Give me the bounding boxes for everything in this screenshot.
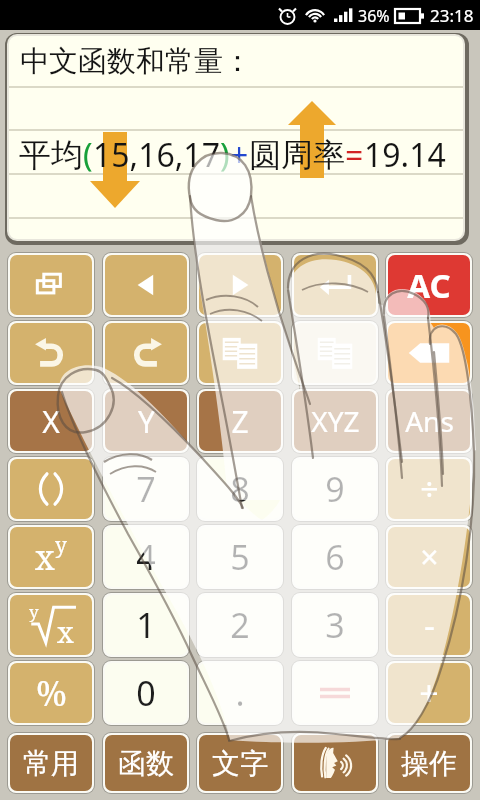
staticText: = (345, 133, 364, 177)
button[interactable]: Parentheses (10, 459, 92, 519)
button[interactable]: 操作 (388, 735, 470, 791)
button[interactable]: % (10, 663, 92, 723)
staticText: 23:18 (430, 4, 474, 27)
staticText: 5 (230, 534, 250, 580)
button[interactable]: 6 (294, 527, 376, 587)
button[interactable]: 常用 (10, 735, 92, 791)
staticText: 3 (325, 602, 345, 648)
button[interactable]: x to the power of y (10, 527, 92, 587)
staticText: y (29, 600, 39, 623)
button[interactable]: 9 (294, 459, 376, 519)
staticText: 7 (136, 466, 156, 512)
staticText: ÷ (420, 467, 439, 511)
staticText: y (55, 531, 67, 560)
staticText: 9 (325, 466, 345, 512)
staticText: 6 (325, 534, 345, 580)
button[interactable]: . (199, 663, 281, 723)
button[interactable]: 2 (199, 595, 281, 655)
staticText: 8 (230, 466, 250, 512)
staticText: + (419, 670, 439, 716)
button[interactable]: XYZ (294, 391, 376, 451)
button[interactable]: Move left (105, 255, 187, 315)
button[interactable]: - (388, 595, 470, 655)
staticText: ( (83, 133, 93, 177)
button[interactable]: y-th root of x (10, 595, 92, 655)
button[interactable]: 1 (105, 595, 187, 655)
staticText: 19.14 (364, 133, 446, 177)
button[interactable]: 5 (199, 527, 281, 587)
button[interactable]: Ans (388, 391, 470, 451)
staticText: + (230, 133, 249, 177)
staticText: - (424, 602, 435, 648)
button[interactable]: 3 (294, 595, 376, 655)
button[interactable]: 文字 (199, 735, 281, 791)
button[interactable]: 8 (199, 459, 281, 519)
button[interactable]: 4 (105, 527, 187, 587)
button[interactable]: + (388, 663, 470, 723)
staticText: 0 (136, 670, 156, 716)
staticText: x (57, 612, 74, 651)
button[interactable]: Z (199, 391, 281, 451)
button[interactable]: 0 (105, 663, 187, 723)
staticText: . (235, 670, 245, 716)
staticText: 15,16,17 (93, 133, 220, 177)
staticText: 平均 (19, 135, 83, 175)
staticText: AC (407, 263, 451, 308)
staticText: 36% (358, 5, 390, 27)
button[interactable]: = (294, 663, 376, 723)
staticText: × (420, 535, 439, 579)
button[interactable]: Voice input (294, 735, 376, 791)
staticText: 1 (136, 602, 156, 648)
button[interactable]: Redo (105, 323, 187, 383)
staticText: XYZ (311, 402, 360, 440)
staticText: 操作 (401, 746, 457, 781)
staticText: 中文函数和常量： (20, 43, 252, 80)
staticText: 常用 (23, 746, 79, 781)
staticText: Y (138, 401, 155, 442)
button[interactable]: Windows (10, 255, 92, 315)
button[interactable]: Enter (294, 255, 376, 315)
button[interactable]: Y (105, 391, 187, 451)
staticText: Ans (405, 402, 454, 440)
staticText: X (42, 401, 60, 442)
staticText: 2 (230, 602, 250, 648)
button[interactable]: 函数 (105, 735, 187, 791)
button[interactable]: 7 (105, 459, 187, 519)
staticText: x (35, 534, 55, 580)
staticText: 4 (136, 534, 156, 580)
button[interactable]: Move right (199, 255, 281, 315)
button[interactable]: Paste (294, 323, 376, 383)
staticText: 文字 (212, 746, 268, 781)
staticText: % (36, 670, 67, 716)
button[interactable]: × (388, 527, 470, 587)
button[interactable]: Copy (199, 323, 281, 383)
button[interactable]: Undo (10, 323, 92, 383)
button[interactable]: X (10, 391, 92, 451)
staticText: 函数 (118, 746, 174, 781)
button[interactable]: ÷ (388, 459, 470, 519)
button[interactable]: AC (388, 255, 470, 315)
button[interactable]: Backspace (388, 323, 470, 383)
staticText: ) (220, 133, 230, 177)
staticText: Z (231, 401, 249, 442)
staticText: 圆周率 (249, 135, 345, 175)
